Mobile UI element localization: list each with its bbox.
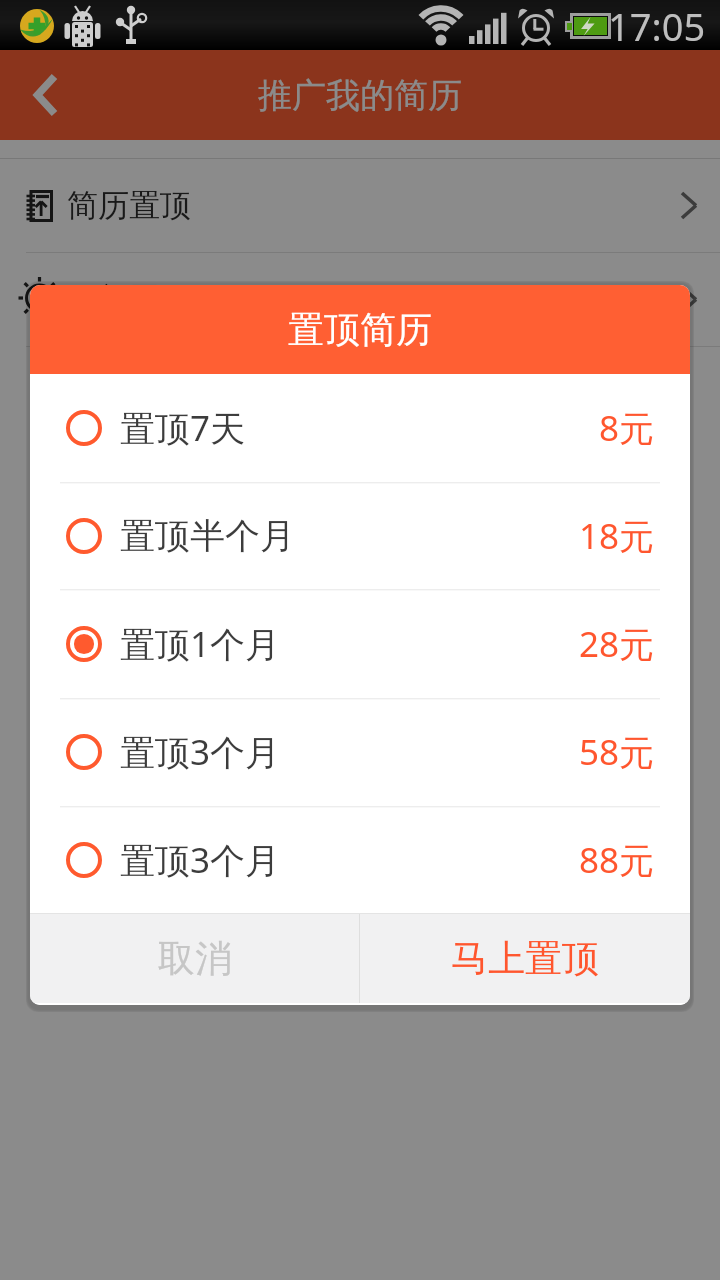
button[interactable]: 取消 [30, 914, 359, 1003]
staticText: 置顶7天 [120, 404, 246, 452]
staticText: 置顶半个月 [120, 514, 295, 558]
staticText: 置顶1个月 [120, 620, 281, 668]
staticText: 刷新置顶 [67, 280, 191, 319]
button[interactable]: 马上置顶 [360, 914, 690, 1003]
staticText: 推广我的简历 [258, 74, 462, 117]
staticText: 置顶3个月 [120, 836, 281, 884]
staticText: 简历置顶 [67, 186, 191, 225]
staticText: 取消 [158, 935, 232, 982]
button[interactable]: 置顶半个月 [30, 482, 690, 589]
button[interactable]: 简历置顶 [0, 159, 720, 252]
staticText: 58元 [579, 728, 655, 776]
staticText: 88元 [579, 836, 655, 884]
button[interactable]: 置顶3个月 [30, 806, 690, 913]
staticText: 置顶3个月 [120, 728, 281, 776]
button[interactable]: 刷新置顶 [0, 253, 720, 346]
staticText: 28元 [579, 620, 655, 668]
staticText: 马上置顶 [451, 935, 599, 982]
button[interactable]: 置顶3个月 [30, 698, 690, 806]
button[interactable]: 置顶1个月 [30, 589, 690, 698]
staticText: 17:05 [608, 0, 706, 50]
staticText: 置顶简历 [288, 307, 432, 352]
staticText: 18元 [579, 512, 655, 560]
button[interactable]: 置顶7天 [30, 374, 690, 482]
button[interactable]: Back [0, 50, 92, 140]
staticText: 8元 [599, 404, 655, 452]
